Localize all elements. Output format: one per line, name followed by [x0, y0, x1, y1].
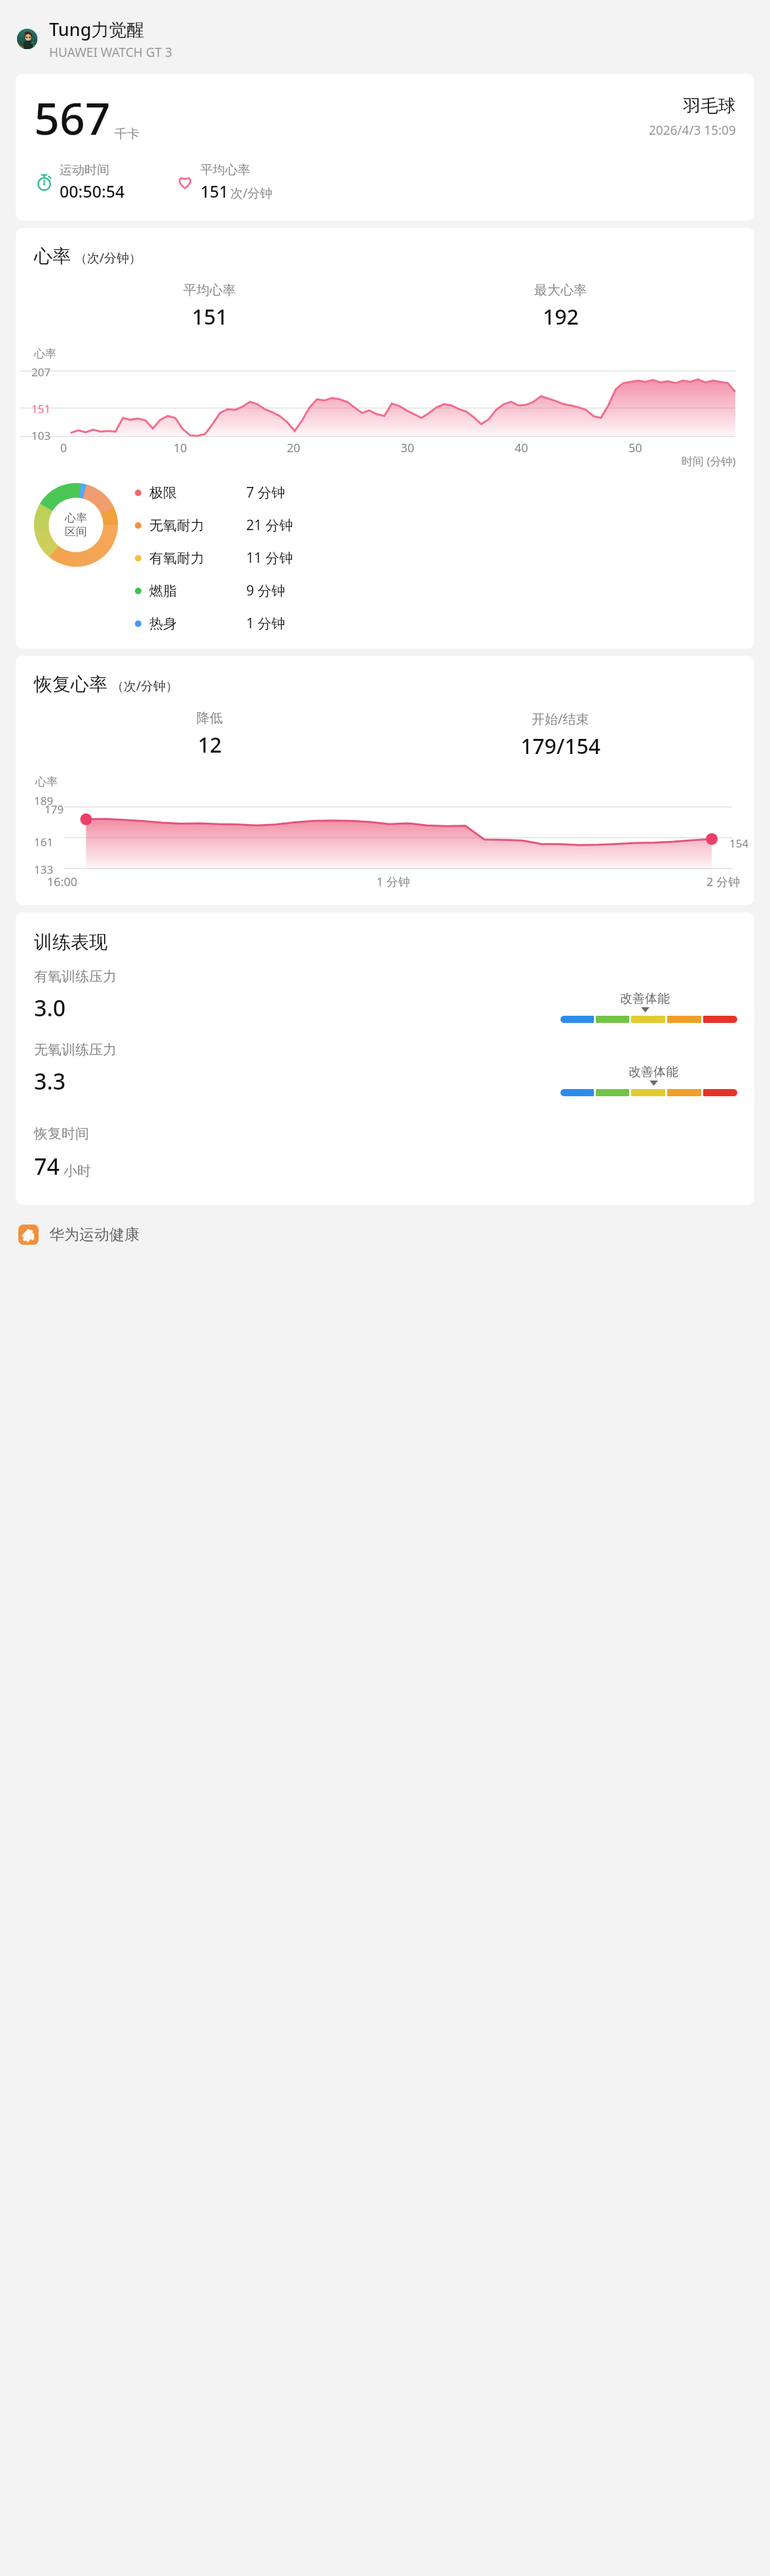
staticText: 20 — [287, 440, 301, 456]
staticText: 2026/4/3 15:09 — [649, 122, 736, 139]
button[interactable]: Huawei Health — [18, 1225, 770, 1245]
staticText: 羽毛球 — [683, 95, 736, 117]
staticText: 151 — [192, 302, 228, 331]
staticText: 次/分钟 — [230, 185, 273, 202]
staticText: 151 — [200, 180, 229, 202]
staticText: 40 — [515, 440, 528, 456]
staticText: 心率 — [34, 347, 56, 361]
staticText: 华为运动健康 — [49, 1225, 139, 1244]
staticText: 平均心率 — [183, 282, 236, 298]
staticText: 恢复心率 — [34, 673, 107, 696]
staticText: 2 分钟 — [706, 874, 740, 890]
staticText: 1 分钟 — [376, 874, 410, 890]
staticText: 平均心率 — [200, 162, 250, 178]
staticText: 192 — [543, 302, 579, 331]
staticText: 0 — [60, 440, 67, 456]
staticText: 热身 — [149, 615, 177, 632]
staticText: （次/分钟） — [111, 677, 179, 694]
staticText: 179/154 — [521, 732, 601, 760]
staticText: 3.3 — [34, 1066, 66, 1096]
staticText: 心率 — [34, 245, 71, 268]
button[interactable]: Profile photo — [17, 17, 770, 61]
button[interactable]: 训练表现 — [16, 912, 754, 1205]
staticText: 10 — [174, 440, 187, 456]
staticText: 恢复时间 — [34, 1125, 89, 1142]
staticText: 心率 — [65, 511, 87, 525]
staticText: 1 分钟 — [246, 614, 285, 633]
staticText: 30 — [401, 440, 414, 456]
staticText: 161 — [34, 834, 54, 850]
staticText: 154 — [729, 836, 749, 851]
staticText: 3.0 — [34, 993, 66, 1023]
staticText: 9 分钟 — [246, 581, 285, 600]
staticText: 74 — [34, 1151, 60, 1181]
staticText: 极限 — [149, 484, 177, 501]
staticText: Tung力觉醒 — [49, 17, 145, 41]
staticText: 降低 — [196, 710, 223, 726]
button[interactable]: 恢复心率 — [16, 656, 754, 905]
staticText: 开始/结束 — [532, 710, 589, 728]
staticText: 50 — [629, 440, 642, 456]
staticText: （次/分钟） — [75, 249, 142, 266]
staticText: 无氧耐力 — [149, 517, 204, 534]
staticText: 改善体能 — [629, 1064, 678, 1080]
staticText: 7 分钟 — [246, 483, 285, 502]
other: Huawei Health — [18, 1225, 39, 1245]
staticText: 有氧耐力 — [149, 550, 204, 567]
staticText: 训练表现 — [34, 931, 107, 954]
staticText: 区间 — [65, 525, 87, 539]
staticText: 16:00 — [47, 874, 78, 890]
staticText: 心率 — [35, 775, 58, 789]
other: Profile photo — [17, 29, 37, 49]
staticText: 12 — [198, 730, 222, 759]
staticText: 千卡 — [115, 126, 139, 142]
staticText: 00:50:54 — [60, 180, 125, 202]
staticText: 21 分钟 — [246, 516, 293, 535]
staticText: 时间 (分钟) — [682, 454, 736, 469]
staticText: 最大心率 — [534, 282, 587, 298]
staticText: HUAWEI WATCH GT 3 — [49, 44, 172, 61]
staticText: 151 — [31, 401, 51, 416]
staticText: 189 — [34, 793, 54, 808]
staticText: 小时 — [64, 1162, 91, 1179]
staticText: 11 分钟 — [246, 548, 293, 567]
staticText: 133 — [34, 862, 54, 877]
staticText: 207 — [31, 365, 51, 380]
staticText: 无氧训练压力 — [34, 1041, 117, 1058]
staticText: 有氧训练压力 — [34, 968, 117, 985]
staticText: 567 — [34, 87, 111, 148]
staticText: 103 — [31, 428, 51, 443]
staticText: 179 — [45, 802, 64, 817]
staticText: 改善体能 — [620, 991, 670, 1007]
staticText: 运动时间 — [60, 162, 109, 178]
button[interactable]: 心率 — [16, 228, 754, 649]
button[interactable]: 567 — [16, 74, 754, 221]
staticText: 燃脂 — [149, 582, 177, 599]
